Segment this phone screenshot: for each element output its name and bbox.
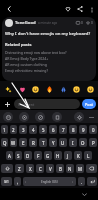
button[interactable]: Back — [2, 2, 15, 15]
button[interactable]: A — [6, 151, 13, 160]
button[interactable]: Like — [62, 3, 74, 15]
button[interactable]: V — [46, 164, 54, 173]
staticText: A — [8, 153, 11, 159]
staticText: H — [56, 153, 60, 159]
button[interactable]: O — [79, 138, 87, 147]
button[interactable]: 7 — [59, 125, 67, 134]
button[interactable]: Distracting emoji row above text box? — [5, 49, 93, 55]
button[interactable]: C — [36, 164, 44, 173]
staticText: P — [92, 140, 95, 146]
button[interactable]: Keyboard tool 3 — [35, 112, 45, 122]
staticText: 1 — [3, 127, 6, 133]
button[interactable]: 3 — [19, 125, 27, 134]
button[interactable]: Emoji reaction 1 — [3, 84, 13, 94]
button[interactable]: . — [78, 177, 85, 186]
button[interactable]: S — [15, 151, 22, 160]
button[interactable]: 9 — [79, 125, 87, 134]
button[interactable]: 2 — [10, 125, 17, 134]
button[interactable]: Keyboard tool 2 — [19, 112, 29, 122]
button[interactable]: AR emoji custom clothing — [5, 61, 93, 67]
button[interactable]: R — [29, 138, 37, 147]
staticText: Q — [3, 140, 7, 146]
button[interactable]: Q — [1, 138, 8, 147]
button[interactable]: More options — [86, 4, 97, 15]
staticText: K — [77, 153, 80, 159]
button[interactable]: T — [39, 138, 47, 147]
button[interactable]: Keyboard tool 5 — [74, 112, 84, 122]
button[interactable]: B — [56, 164, 64, 173]
button[interactable]: Emoji reaction 7 — [85, 84, 95, 94]
button[interactable]: 8 — [69, 125, 77, 134]
button[interactable]: Enter — [87, 177, 97, 186]
button[interactable]: G — [44, 151, 52, 160]
button[interactable]: ‹ — [23, 177, 76, 186]
staticText: 4 — [32, 127, 35, 133]
staticText: T — [42, 140, 45, 146]
button[interactable]: Y — [49, 138, 57, 147]
button[interactable]: Add attachment — [1, 98, 13, 110]
button[interactable]: K — [74, 151, 82, 160]
staticText: 0 — [91, 21, 93, 25]
button[interactable]: W — [10, 138, 17, 147]
staticText: D — [26, 153, 30, 159]
button[interactable]: I — [69, 138, 77, 147]
staticText: O — [81, 140, 85, 146]
button[interactable]: Emoji ethnicities: missing? — [5, 67, 93, 73]
button[interactable]: H — [54, 151, 62, 160]
staticText: U — [61, 140, 65, 146]
button[interactable]: Profile picture — [5, 19, 13, 27]
button[interactable]: M — [76, 164, 84, 173]
button[interactable]: Emoji reaction 3 — [30, 84, 40, 94]
staticText: I — [72, 140, 74, 146]
staticText: 0 — [92, 127, 95, 133]
button[interactable]: Emoji reaction 6 — [71, 84, 81, 94]
button[interactable]: , — [14, 177, 21, 186]
button[interactable]: Share — [74, 3, 86, 15]
button[interactable]: D — [24, 151, 32, 160]
button[interactable]: 6 — [49, 125, 57, 134]
button[interactable]: !#1 — [1, 177, 12, 186]
staticText: L — [87, 153, 90, 159]
button[interactable]: 4 — [29, 125, 37, 134]
button[interactable]: Comment — [14, 99, 80, 109]
staticText: English (US) — [41, 180, 58, 184]
button[interactable]: L — [84, 151, 92, 160]
button[interactable]: J — [64, 151, 72, 160]
staticText: 0 — [81, 21, 83, 25]
button[interactable]: N — [66, 164, 74, 173]
button[interactable]: Emoji reaction 5 — [58, 84, 68, 94]
button[interactable]: More keyboard options — [86, 112, 96, 122]
button[interactable]: X — [26, 164, 34, 173]
button[interactable]: Emoji reaction 4 — [44, 84, 54, 94]
button[interactable]: Backspace — [86, 164, 97, 173]
button[interactable]: AR Emoji Body Type 2024+ — [5, 55, 93, 61]
button[interactable]: Emoji reaction 2 — [17, 84, 27, 94]
button[interactable]: Keyboard tool 1 — [3, 112, 13, 122]
staticText: M — [78, 166, 82, 172]
button[interactable]: 5 — [39, 125, 47, 134]
button[interactable]: F — [34, 151, 42, 160]
button[interactable]: Z — [15, 164, 24, 173]
button[interactable]: 1 — [1, 125, 8, 134]
button[interactable]: Post — [82, 99, 96, 109]
button[interactable]: P — [89, 138, 97, 147]
button[interactable]: Hide keyboard — [80, 190, 89, 199]
button[interactable]: Keyboard tool 4 — [52, 112, 62, 122]
staticText: N — [68, 166, 72, 172]
staticText: 3 — [22, 127, 25, 133]
staticText: 7 — [62, 127, 65, 133]
staticText: G — [46, 153, 50, 159]
staticText: R — [32, 140, 35, 146]
button[interactable]: E — [19, 138, 27, 147]
staticText: X — [29, 166, 32, 172]
button[interactable]: Shift — [1, 164, 13, 173]
staticText: ‹ — [25, 179, 27, 184]
staticText: , — [17, 179, 19, 185]
button[interactable]: 0 — [89, 125, 97, 134]
staticText: 6 — [52, 127, 55, 133]
staticText: AR emoji custom clothing — [5, 62, 47, 67]
button[interactable]: Likes — [86, 21, 93, 25]
button[interactable]: Comments — [76, 21, 83, 25]
button[interactable]: U — [59, 138, 67, 147]
staticText: AR Emoji Body Type 2024+ — [5, 56, 49, 61]
